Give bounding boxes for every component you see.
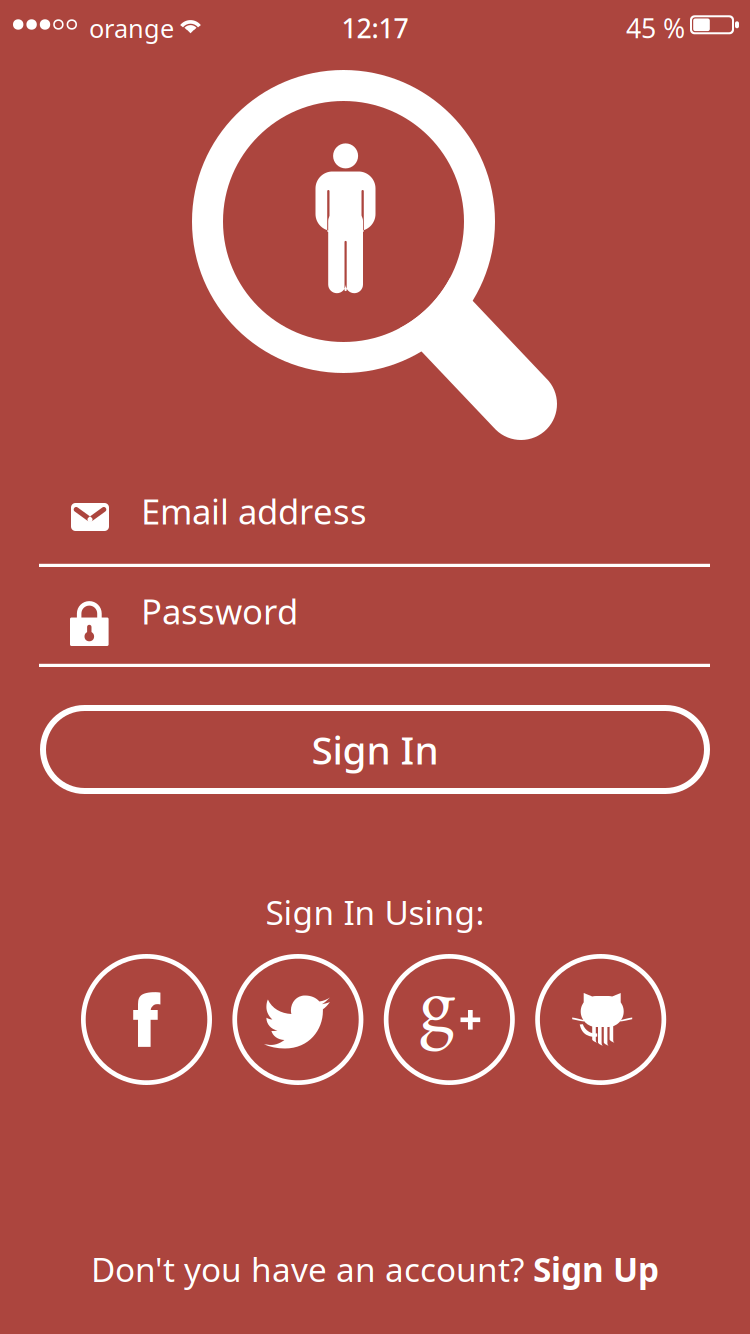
button[interactable]: Password <box>39 591 710 667</box>
staticText: Sign Up <box>533 1247 659 1291</box>
staticText: Don't you have an account? <box>91 1247 533 1291</box>
button[interactable]: Don't you have an account? <box>0 1244 750 1294</box>
button[interactable]: Sign in with Twitter <box>232 954 363 1085</box>
staticText: Email address <box>141 488 367 534</box>
button[interactable]: Sign in with Facebook <box>81 954 212 1085</box>
staticText: g <box>420 948 455 1052</box>
staticText: 45 % <box>626 10 685 46</box>
button[interactable]: Email address <box>39 491 710 567</box>
button[interactable]: Sign in with GitHub <box>535 954 666 1085</box>
staticText: Sign In Using: <box>265 890 484 934</box>
button[interactable]: Sign In <box>40 705 710 794</box>
button[interactable]: Sign in with Google Plus <box>384 954 515 1085</box>
staticText: Sign In <box>311 724 438 775</box>
staticText: 12:17 <box>341 10 408 46</box>
staticText: orange <box>89 11 174 45</box>
staticText: Password <box>141 588 298 634</box>
